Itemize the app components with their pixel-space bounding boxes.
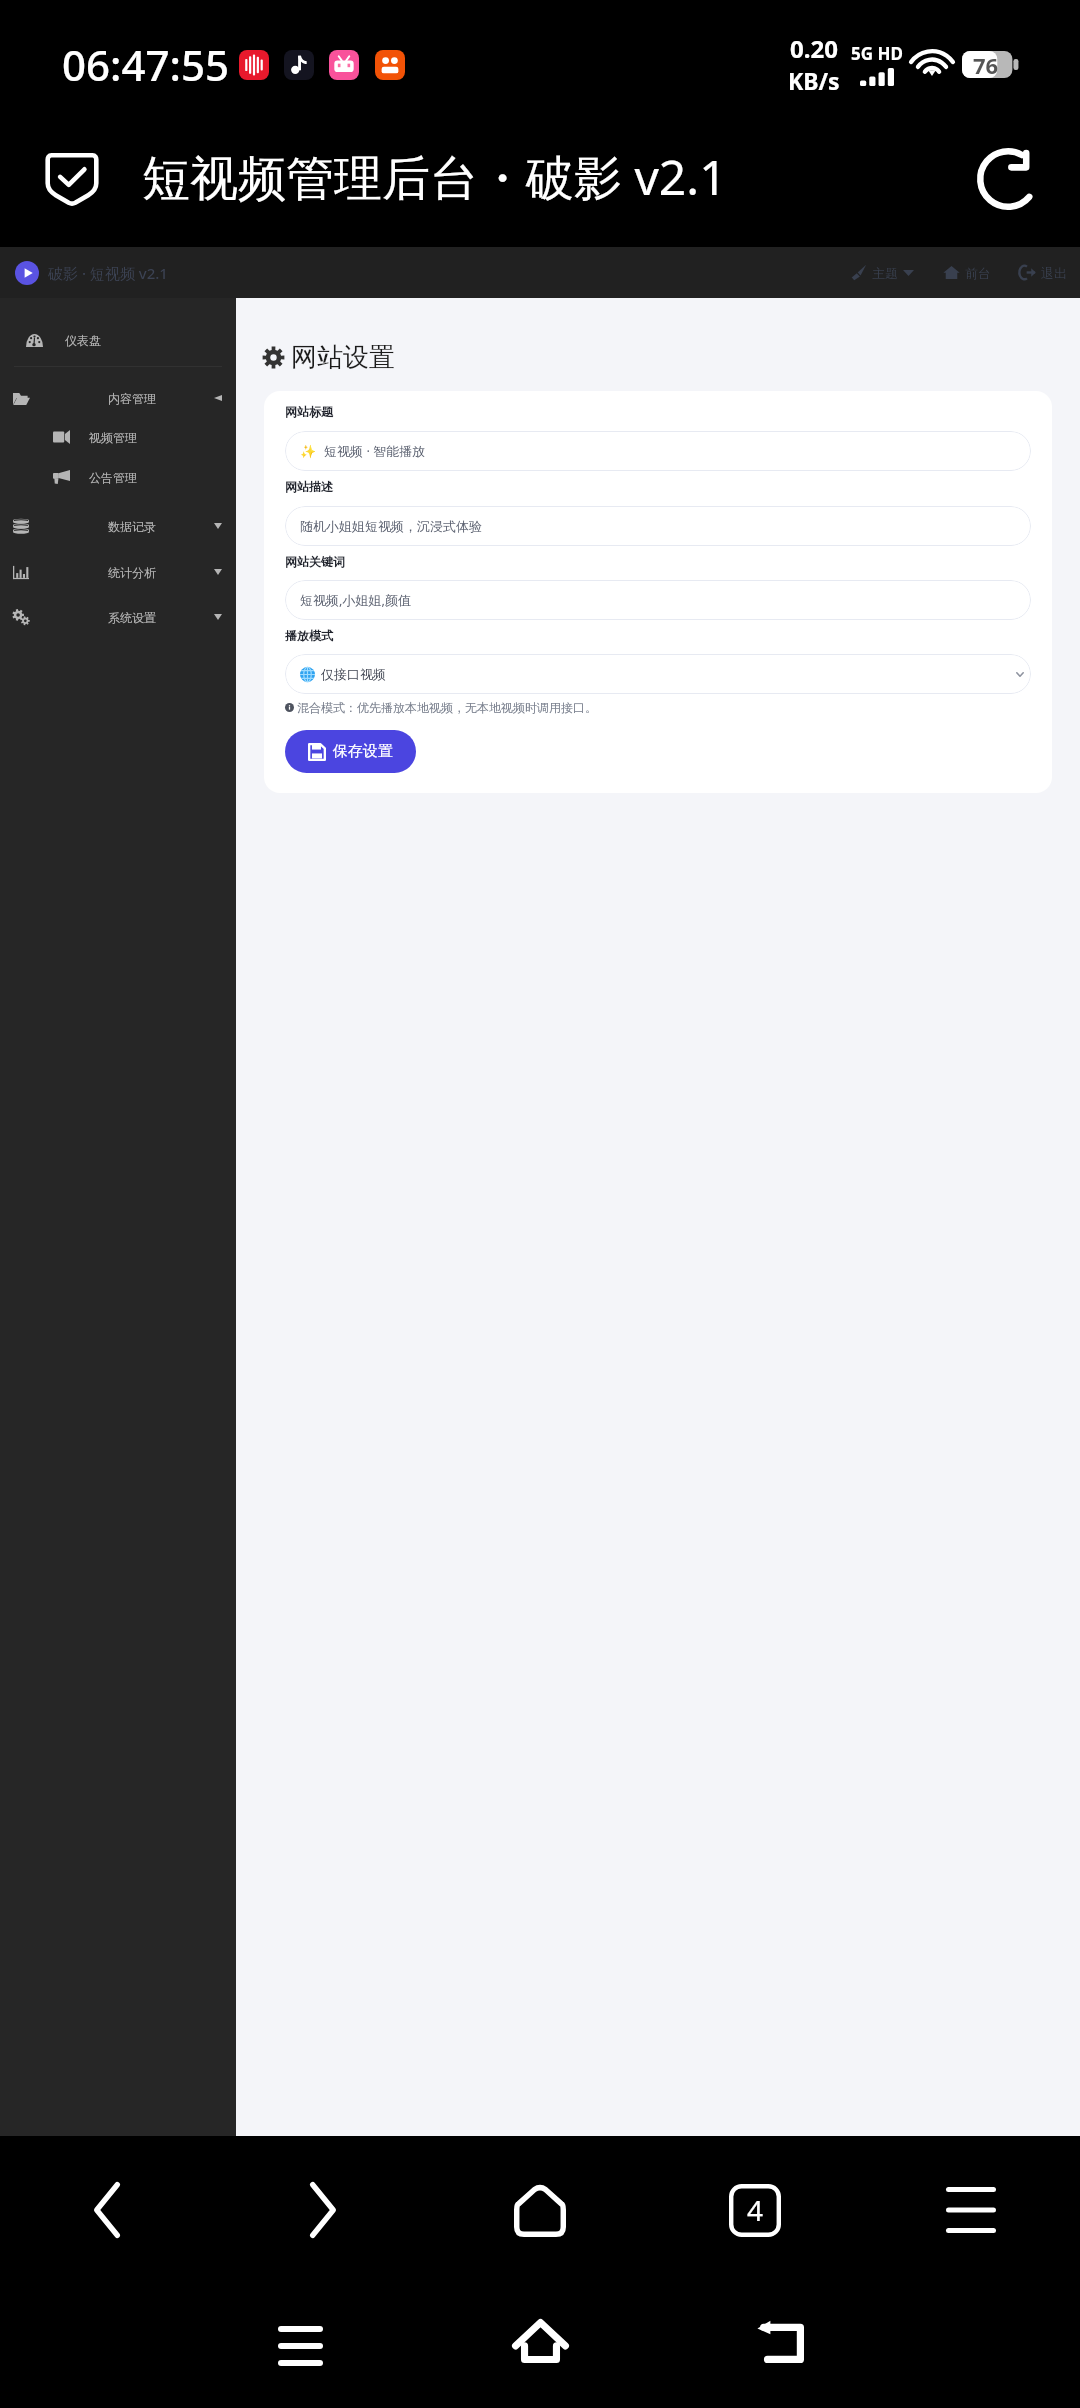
staticText: 内容管理 — [108, 391, 156, 406]
button[interactable]: Forward — [269, 2156, 377, 2264]
staticText: 统计分析 — [108, 565, 156, 580]
button[interactable]: 随机小姐姐短视频，沉浸式体验 — [285, 506, 1031, 546]
staticText: 网站设置 — [291, 341, 395, 374]
staticText: 短视频 · 智能播放 — [324, 442, 426, 460]
staticText: 4 — [747, 2191, 764, 2229]
staticText: 随机小姐姐短视频，沉浸式体验 — [300, 518, 482, 534]
staticText: 短视频管理后台・破影 v2.1 — [142, 144, 727, 210]
button[interactable]: Home — [486, 2286, 594, 2394]
button[interactable]: Back — [53, 2156, 161, 2264]
staticText: 仅接口视频 — [321, 666, 386, 682]
button[interactable]: Back — [726, 2287, 834, 2395]
button[interactable]: 内容管理 — [0, 379, 236, 417]
staticText: 混合模式：优先播放本地视频，无本地视频时调用接口。 — [297, 700, 597, 715]
staticText: 前台 — [965, 265, 991, 281]
button[interactable]: Site security — [38, 145, 106, 213]
button[interactable]: 视频管理 — [0, 418, 236, 456]
staticText: 5G HD — [851, 42, 903, 65]
staticText: 退出 — [1041, 265, 1067, 281]
staticText: 网站关键词 — [285, 554, 345, 569]
button[interactable]: Menu — [917, 2156, 1025, 2264]
button[interactable]: 保存设置 — [285, 730, 416, 773]
button[interactable]: 系统设置 — [0, 598, 236, 636]
staticText: 06:47:55 — [62, 36, 229, 93]
button[interactable]: 数据记录 — [0, 507, 236, 545]
staticText: 短视频,小姐姐,颜值 — [300, 591, 411, 609]
staticText: 主题 — [872, 265, 898, 281]
button[interactable]: 统计分析 — [0, 553, 236, 591]
staticText: 破影 · 短视频 v2.1 — [48, 263, 168, 283]
staticText: 系统设置 — [108, 610, 156, 625]
button[interactable]: 公告管理 — [0, 458, 236, 496]
staticText: 76 — [973, 50, 999, 77]
button[interactable]: Reload — [968, 139, 1048, 219]
button[interactable]: 主题 — [850, 258, 914, 287]
staticText: 保存设置 — [333, 742, 393, 761]
staticText: 网站描述 — [285, 479, 333, 494]
button[interactable]: Home — [486, 2156, 594, 2264]
staticText: KB/s — [788, 65, 840, 96]
button[interactable]: 网站设置 — [256, 335, 401, 380]
staticText: 网站标题 — [285, 404, 333, 419]
button[interactable]: 前台 — [943, 258, 991, 287]
button[interactable]: 短视频,小姐姐,颜值 — [285, 580, 1031, 620]
staticText: 公告管理 — [89, 470, 137, 485]
button[interactable]: Recents — [246, 2292, 354, 2400]
staticText: 仪表盘 — [65, 333, 101, 348]
staticText: 播放模式 — [285, 628, 333, 643]
staticText: 数据记录 — [108, 519, 156, 534]
button[interactable]: ✨ — [285, 431, 1031, 471]
button[interactable]: 仪表盘 — [0, 321, 236, 359]
staticText: ✨ — [300, 444, 317, 459]
button[interactable]: Tabs — [701, 2156, 809, 2264]
staticText: 视频管理 — [89, 430, 137, 445]
button[interactable]: 退出 — [1019, 258, 1067, 287]
button[interactable]: 仅接口视频 — [285, 654, 1031, 694]
staticText: 0.20 — [790, 32, 838, 65]
